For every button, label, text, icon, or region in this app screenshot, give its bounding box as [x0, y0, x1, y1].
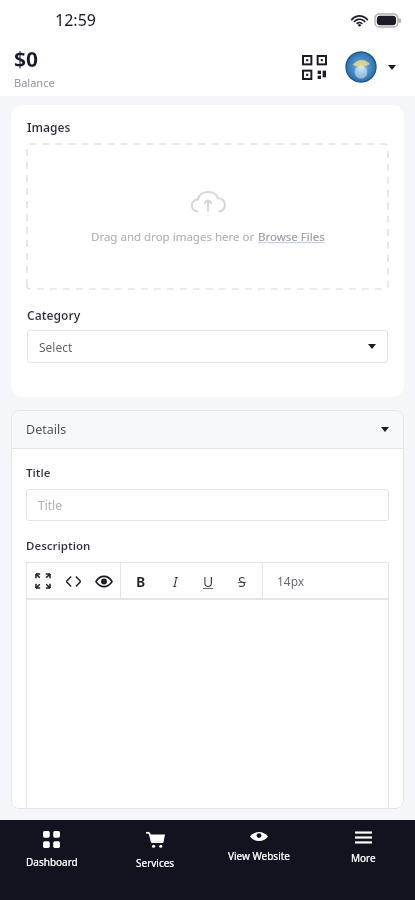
button[interactable]: Details: [11, 410, 404, 448]
button[interactable]: View Website: [207, 820, 311, 880]
button[interactable]: Account menu: [383, 58, 401, 76]
button[interactable]: Services: [103, 820, 207, 880]
staticText: Description: [26, 538, 91, 554]
button[interactable]: S: [228, 567, 256, 595]
button[interactable]: B: [127, 567, 155, 595]
staticText: View Website: [228, 849, 290, 863]
staticText: B: [136, 572, 146, 591]
button[interactable]: 14px: [263, 562, 389, 599]
staticText: $0: [14, 45, 39, 74]
button[interactable]: Dashboard: [0, 820, 103, 880]
staticText: Title: [38, 497, 62, 513]
staticText: Details: [26, 421, 381, 438]
button[interactable]: Drag and drop images here or: [27, 144, 388, 289]
staticText: U: [203, 572, 214, 591]
staticText: Title: [26, 465, 51, 481]
button[interactable]: Scan QR code: [297, 50, 331, 84]
button[interactable]: Fullscreen: [29, 567, 57, 595]
staticText: 12:59: [55, 9, 96, 31]
button[interactable]: Select: [27, 330, 388, 363]
button[interactable]: More: [311, 820, 415, 880]
button[interactable]: Source code: [59, 567, 87, 595]
staticText: Browse Files: [258, 229, 325, 245]
staticText: Drag and drop images here or: [91, 229, 258, 245]
staticText: Dashboard: [26, 855, 78, 869]
staticText: Select: [39, 339, 368, 355]
button[interactable]: U: [194, 567, 222, 595]
button[interactable]: [26, 599, 389, 809]
staticText: Balance: [14, 75, 55, 90]
button[interactable]: Title: [26, 489, 389, 521]
staticText: I: [173, 572, 178, 591]
staticText: Images: [27, 119, 71, 135]
button[interactable]: Preview: [90, 567, 118, 595]
button[interactable]: I: [161, 567, 189, 595]
staticText: Services: [136, 856, 175, 870]
staticText: Category: [27, 307, 81, 323]
button[interactable]: Account: [345, 51, 377, 83]
staticText: More: [351, 851, 376, 865]
staticText: 14px: [277, 573, 305, 589]
staticText: S: [238, 572, 246, 591]
